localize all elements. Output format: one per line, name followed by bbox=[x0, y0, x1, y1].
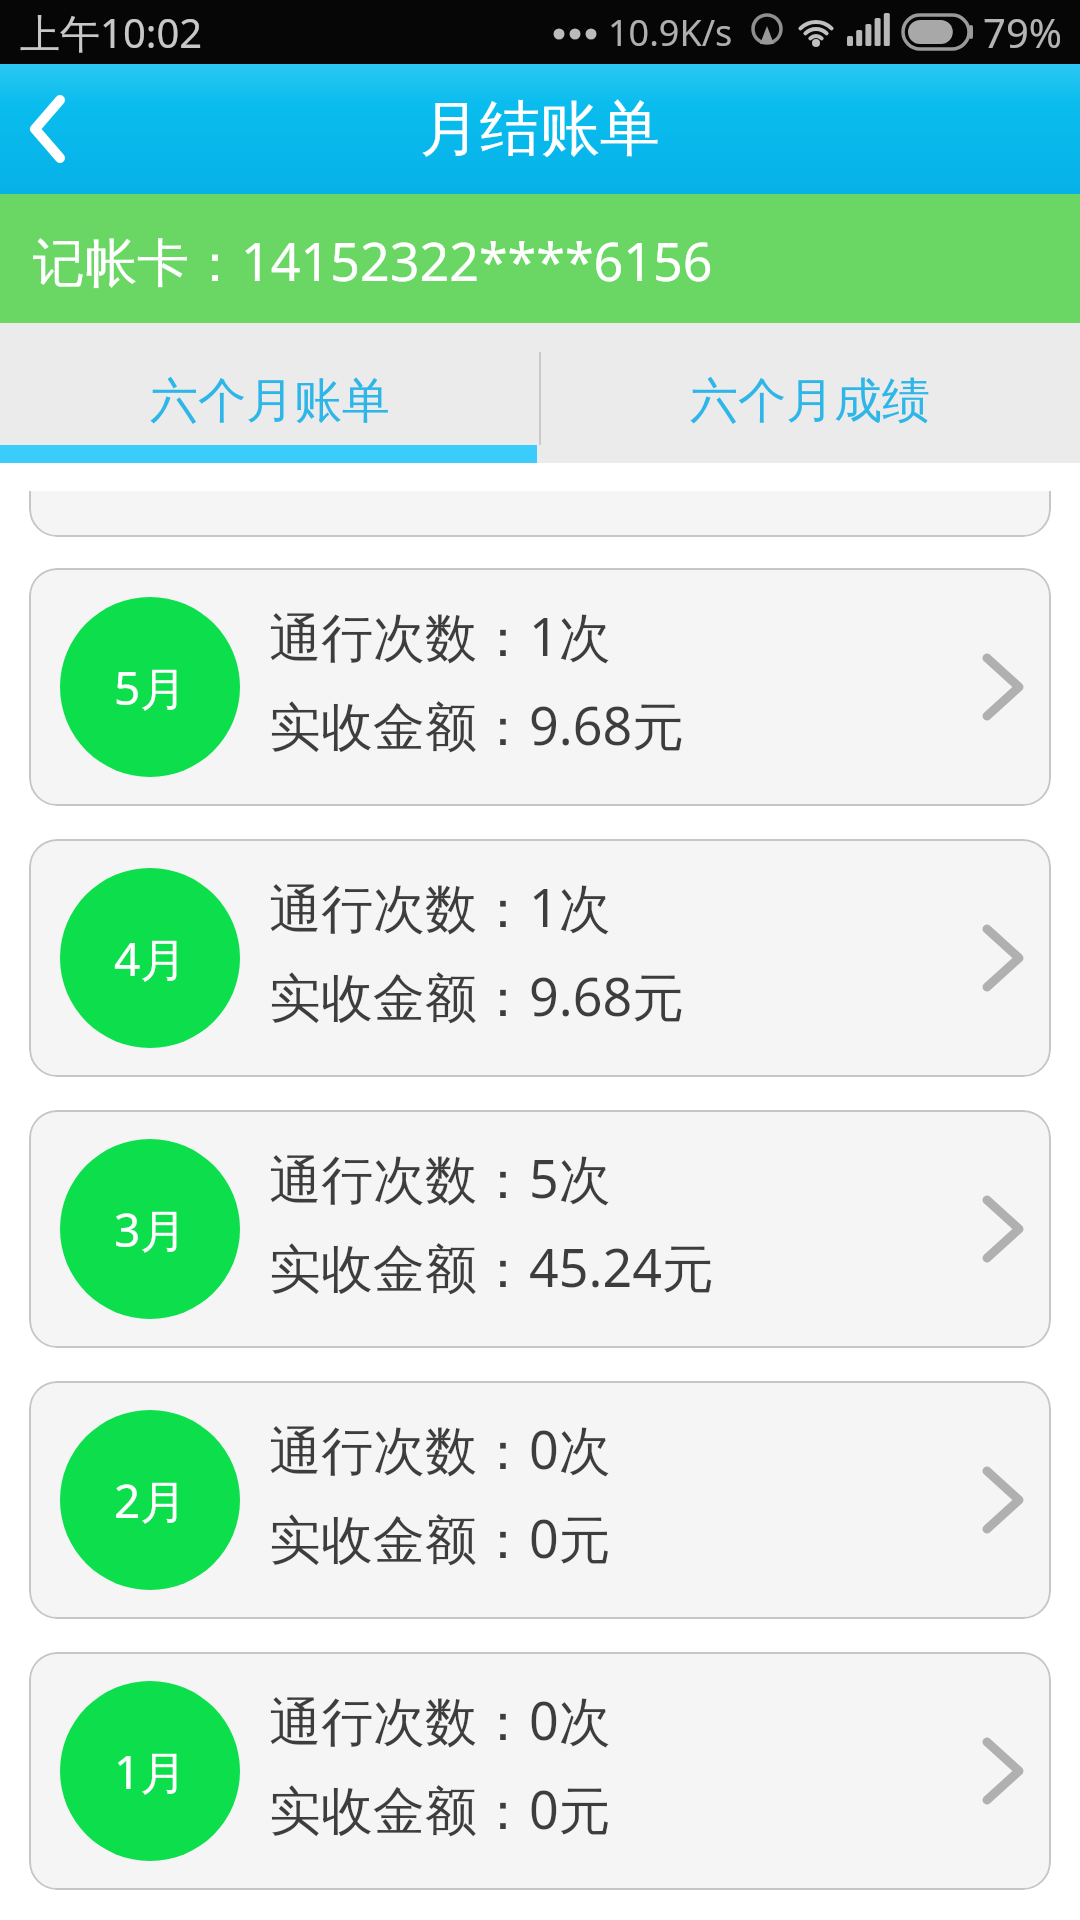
staticText: 实收金额：9.68元 bbox=[269, 960, 685, 1031]
button[interactable]: 1月 bbox=[29, 1652, 1051, 1890]
staticText: 通行次数：5次 bbox=[269, 1142, 611, 1213]
staticText: 实收金额：0元 bbox=[269, 1773, 611, 1844]
staticText: 2月 bbox=[114, 1469, 187, 1532]
button[interactable]: 六个月账单 bbox=[0, 323, 540, 463]
button[interactable]: 4月 bbox=[29, 839, 1051, 1077]
staticText: 通行次数：1次 bbox=[269, 600, 611, 671]
staticText: 10.9K/s bbox=[608, 8, 733, 57]
staticText: 记帐卡：14152322****6156 bbox=[33, 225, 713, 296]
button[interactable] bbox=[0, 64, 110, 194]
button[interactable]: 2月 bbox=[29, 1381, 1051, 1619]
button[interactable]: 5月 bbox=[29, 568, 1051, 806]
staticText: 上午10:02 bbox=[20, 5, 203, 60]
button[interactable]: 六个月成绩 bbox=[540, 323, 1080, 463]
staticText: 3月 bbox=[114, 1198, 187, 1261]
staticText: 79% bbox=[983, 5, 1062, 59]
staticText: 月结账单 bbox=[420, 91, 660, 167]
staticText: 六个月成绩 bbox=[690, 371, 930, 431]
staticText: 通行次数：0次 bbox=[269, 1684, 611, 1755]
staticText: 4月 bbox=[114, 927, 187, 990]
staticText: 实收金额：9.68元 bbox=[269, 689, 685, 760]
staticText: 1月 bbox=[114, 1740, 187, 1803]
staticText: 通行次数：1次 bbox=[269, 871, 611, 942]
staticText: 通行次数：0次 bbox=[269, 1413, 611, 1484]
staticText: 实收金额：45.24元 bbox=[269, 1231, 714, 1302]
staticText: 六个月账单 bbox=[150, 371, 390, 431]
staticText: 实收金额：0元 bbox=[269, 1502, 611, 1573]
staticText: 5月 bbox=[114, 656, 187, 719]
button[interactable]: 3月 bbox=[29, 1110, 1051, 1348]
